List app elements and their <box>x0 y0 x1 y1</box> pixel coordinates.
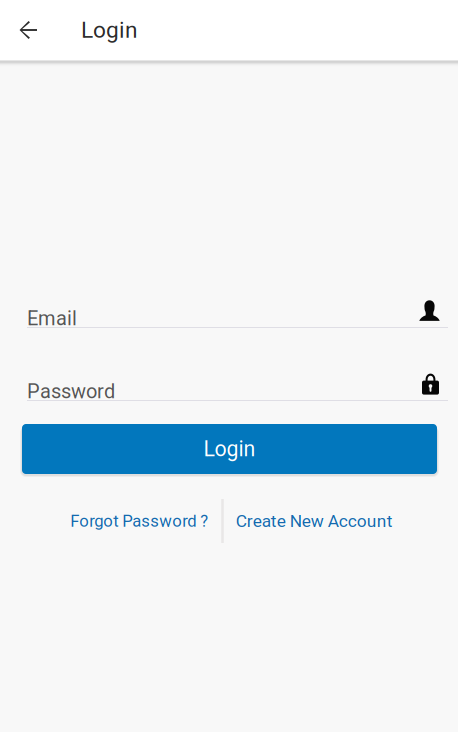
staticText: Email <box>27 307 77 330</box>
staticText: Login <box>203 436 255 461</box>
button[interactable]: Login <box>22 424 437 474</box>
staticText: Create New Account <box>236 511 393 531</box>
button[interactable]: Create New Account <box>224 499 407 543</box>
button[interactable]: Forgot Password ? <box>56 499 221 543</box>
staticText: Password <box>27 380 115 403</box>
staticText: Login <box>81 17 138 43</box>
button[interactable]: Back <box>0 0 81 60</box>
staticText: Forgot Password ? <box>70 511 208 531</box>
